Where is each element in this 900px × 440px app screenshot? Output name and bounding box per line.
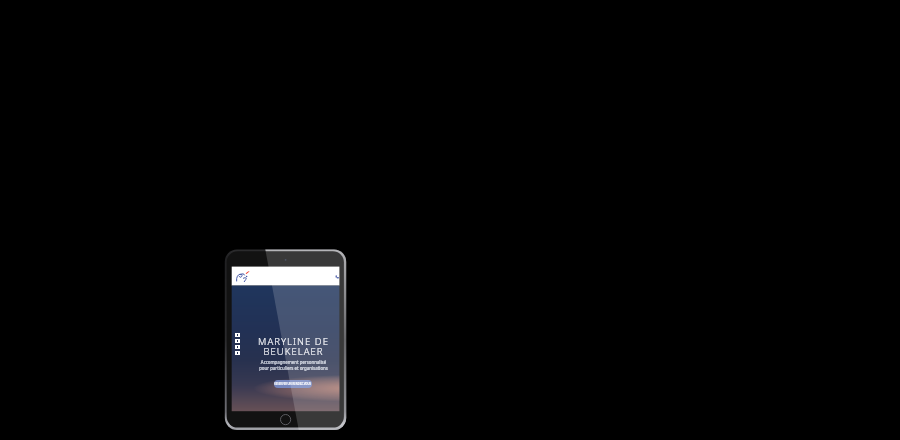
staticText: MARYLINE DE BEUKELAER	[258, 335, 329, 358]
button[interactable]: Facebook	[235, 339, 240, 343]
button[interactable]: RÉSERVER UN RENDEZ-VOUS ↗	[274, 380, 312, 388]
button[interactable]: Home	[235, 269, 251, 283]
staticText: RÉSERVER UN RENDEZ-VOUS ↗	[274, 382, 312, 386]
button[interactable]: LinkedIn	[235, 333, 240, 337]
staticText: Accompagnement personnalisé pour particu…	[259, 359, 328, 371]
button[interactable]: Call	[332, 271, 340, 281]
button[interactable]: YouTube	[235, 351, 240, 355]
button[interactable]: Instagram	[235, 345, 240, 349]
